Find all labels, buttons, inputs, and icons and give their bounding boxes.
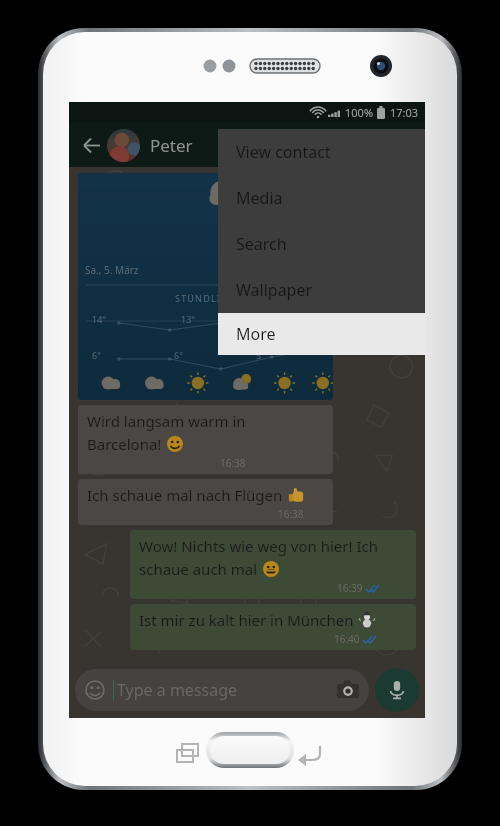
staticText: 17:03 [390, 105, 419, 120]
staticText: 100% [345, 105, 374, 120]
button[interactable]: Teils sonnig [78, 173, 333, 400]
button[interactable]: Wow! Nichts wie weg von hier! Ich [130, 530, 416, 599]
button[interactable]: Home [206, 732, 294, 768]
button[interactable]: Media [218, 175, 425, 221]
staticText: 6° [174, 349, 184, 361]
button[interactable]: Type a message [75, 669, 369, 711]
button[interactable]: More [218, 313, 425, 355]
button[interactable]: Wallpaper [218, 267, 425, 313]
staticText: Barcelona! [87, 434, 162, 454]
staticText: schaue auch mal [139, 559, 258, 579]
button[interactable]: Contact photo [107, 129, 140, 162]
button[interactable]: Back [75, 130, 105, 160]
staticText: Wird langsam warm in [87, 411, 246, 431]
staticText: 16:38 [278, 507, 304, 521]
staticText: Ist mir zu kalt hier in München [139, 610, 354, 630]
staticText: More [236, 323, 276, 345]
staticText: Ich schaue mal nach Flügen [87, 485, 283, 505]
staticText: Media [236, 187, 283, 209]
button[interactable]: Back [294, 740, 328, 774]
staticText: 5° [256, 349, 266, 361]
button[interactable]: Voice message [375, 668, 419, 712]
staticText: Search [236, 233, 287, 255]
staticText: 14° [92, 313, 107, 325]
staticText: 16:38 [220, 456, 246, 470]
staticText: 6° [92, 349, 102, 361]
staticText: 13° [181, 313, 196, 325]
button[interactable]: Search [218, 221, 425, 267]
button[interactable]: Camera [337, 679, 359, 701]
button[interactable]: Ich schaue mal nach Flügen [78, 479, 333, 525]
staticText: Wallpaper [236, 279, 313, 301]
staticText: Wow! Nichts wie weg von hier! Ich [139, 536, 378, 556]
staticText: STÜNDLICH [175, 292, 236, 304]
staticText: 16:39 [337, 581, 363, 595]
staticText: Type a message [117, 679, 238, 701]
button[interactable]: Recent apps [172, 740, 206, 774]
staticText: Peter [150, 134, 193, 157]
button[interactable]: View contact [218, 129, 425, 175]
button[interactable]: Ist mir zu kalt hier in München [130, 604, 416, 650]
staticText: View contact [236, 141, 331, 163]
staticText: Sa., 5. März [85, 263, 139, 277]
button[interactable]: Wird langsam warm in [78, 405, 333, 474]
staticText: 16:40 [334, 632, 360, 646]
